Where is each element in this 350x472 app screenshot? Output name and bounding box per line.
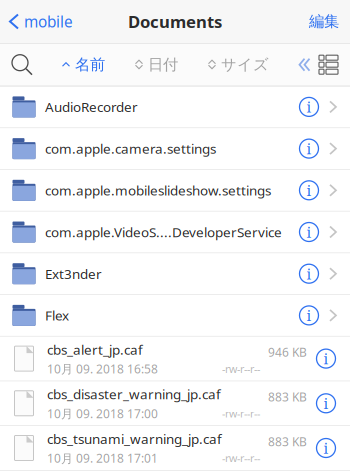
staticText: i [306, 97, 311, 117]
button[interactable]: Flex [0, 295, 350, 337]
staticText: 名前 [75, 55, 105, 74]
staticText: cbs_alert_jp.caf [47, 340, 143, 359]
staticText: 883 KB [268, 389, 307, 405]
staticText: i [306, 139, 311, 159]
staticText: 編集 [309, 12, 339, 31]
staticText: cbs_tsunami_warning_jp.caf [47, 430, 222, 448]
staticText: -rw-r--r-- [222, 406, 260, 421]
staticText: i [323, 438, 328, 458]
staticText: cbs_disaster_warning_jp.caf [47, 385, 221, 403]
button[interactable]: cbs_alert_jp.caf [0, 337, 350, 381]
staticText: 10月 09. 2018 16:58 [47, 361, 158, 377]
staticText: 946 KB [268, 344, 307, 360]
staticText: i [323, 349, 328, 369]
staticText: -rw-r--r-- [222, 451, 260, 465]
button[interactable]: com.apple.VideoS....DeveloperService [0, 211, 350, 253]
staticText: i [306, 264, 311, 284]
button[interactable]: 名前 [62, 55, 105, 74]
button[interactable]: com.apple.camera.settings [0, 128, 350, 170]
staticText: サイズ [221, 55, 269, 74]
button[interactable]: Search [0, 45, 32, 85]
staticText: i [306, 222, 311, 242]
button[interactable]: cbs_tsunami_warning_jp.caf [0, 426, 350, 471]
staticText: i [306, 180, 311, 200]
staticText: 10月 09. 2018 17:00 [47, 405, 158, 422]
staticText: mobile [24, 11, 73, 32]
button[interactable]: AudioRecorder [0, 86, 350, 128]
staticText: i [323, 393, 328, 413]
button[interactable]: サイズ [208, 55, 269, 74]
staticText: Flex [45, 306, 69, 324]
staticText: Ext3nder [45, 264, 102, 283]
button[interactable]: com.apple.mobileslideshow.settings [0, 170, 350, 211]
staticText: com.apple.camera.settings [45, 139, 216, 158]
staticText: i [306, 305, 311, 325]
staticText: com.apple.VideoS....DeveloperService [45, 223, 282, 241]
button[interactable]: 編集 [309, 6, 350, 37]
staticText: -rw-r--r-- [222, 361, 260, 376]
button[interactable]: 日付 [135, 55, 178, 74]
button[interactable]: cbs_disaster_warning_jp.caf [0, 381, 350, 426]
staticText: 883 KB [268, 433, 307, 450]
button[interactable]: Ext3nder [0, 253, 350, 295]
button[interactable]: mobile [0, 5, 73, 38]
staticText: 10月 09. 2018 17:01 [47, 450, 158, 466]
button[interactable]: Collapse [299, 59, 310, 71]
staticText: 日付 [148, 55, 178, 74]
button[interactable]: View options [310, 55, 350, 74]
staticText: Documents [128, 10, 222, 33]
staticText: AudioRecorder [45, 98, 138, 116]
staticText: com.apple.mobileslideshow.settings [45, 181, 271, 199]
